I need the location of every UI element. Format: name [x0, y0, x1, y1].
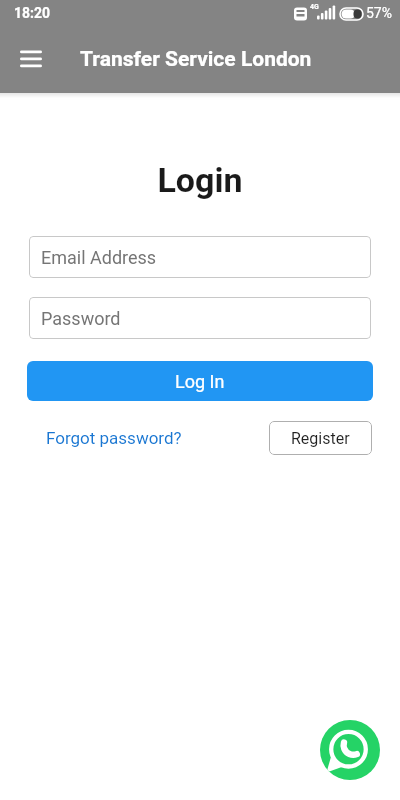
button[interactable]: Register [269, 421, 372, 455]
staticText: Register [291, 429, 350, 448]
staticText: Login [0, 160, 400, 200]
button[interactable]: Password [29, 297, 371, 339]
staticText: 4G [310, 3, 319, 11]
staticText: 18:20 [14, 5, 51, 21]
button[interactable]: Forgot password? [38, 421, 190, 455]
staticText: Email Address [41, 247, 157, 268]
button[interactable] [13, 42, 49, 78]
staticText: 57% [366, 5, 392, 21]
staticText: Password [41, 308, 121, 329]
button[interactable] [320, 720, 380, 780]
button[interactable]: Log In [27, 361, 373, 401]
button[interactable]: Email Address [29, 236, 371, 278]
staticText: Log In [175, 371, 225, 392]
staticText: Forgot password? [46, 428, 182, 448]
staticText: Transfer Service London [80, 47, 312, 72]
